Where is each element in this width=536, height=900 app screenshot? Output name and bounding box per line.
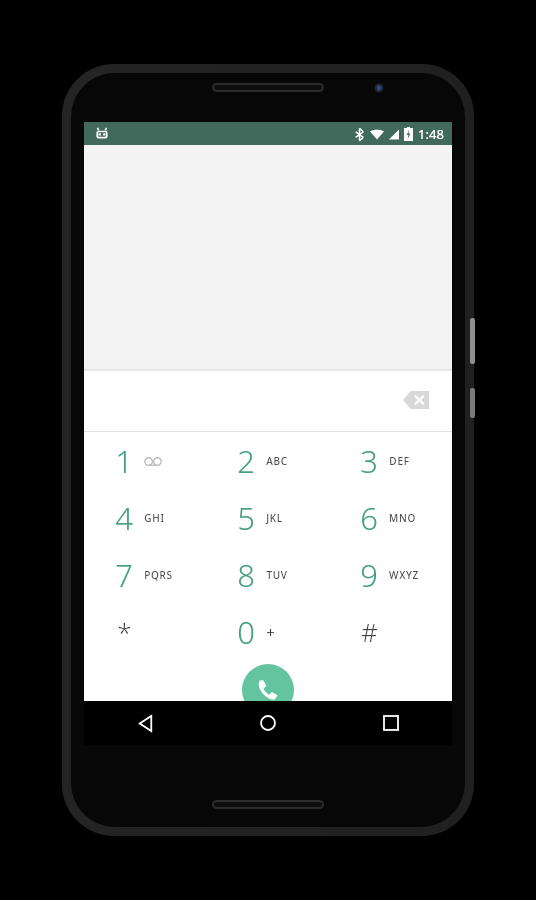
button[interactable]: 6 (329, 489, 452, 546)
staticText: 1:48 (418, 125, 444, 143)
button[interactable]: Back (84, 701, 206, 745)
staticText: 2 (237, 440, 255, 482)
staticText: MNO (389, 511, 416, 525)
staticText: 1 (115, 440, 133, 482)
button[interactable]: 2 (206, 432, 329, 489)
staticText: WXYZ (389, 568, 419, 582)
button[interactable]: 5 (206, 489, 329, 546)
staticText: + (266, 622, 275, 642)
button[interactable]: 7 (84, 546, 206, 603)
staticText: 5 (237, 497, 255, 539)
staticText: TUV (266, 568, 288, 582)
staticText: ABC (266, 454, 288, 468)
staticText: 0 (237, 611, 255, 653)
button[interactable]: Recents (329, 701, 452, 745)
staticText: GHI (144, 511, 165, 525)
button[interactable]: # (329, 603, 452, 660)
button[interactable]: 9 (329, 546, 452, 603)
staticText: 6 (360, 497, 378, 539)
staticText: DEF (389, 454, 410, 468)
button[interactable]: Call (242, 664, 294, 716)
staticText: PQRS (144, 568, 173, 582)
staticText: * (117, 614, 132, 649)
staticText: 3 (360, 440, 378, 482)
staticText: 7 (115, 554, 133, 596)
staticText: 8 (237, 554, 255, 596)
staticText: # (361, 614, 378, 649)
staticText: 4 (115, 497, 133, 539)
button[interactable]: 3 (329, 432, 452, 489)
button[interactable]: 8 (206, 546, 329, 603)
button[interactable]: Backspace (394, 380, 438, 420)
button[interactable]: 0 (206, 603, 329, 660)
button[interactable]: * (84, 603, 206, 660)
staticText: 9 (360, 554, 378, 596)
button[interactable]: 4 (84, 489, 206, 546)
button[interactable]: Home (206, 701, 329, 745)
staticText: JKL (266, 511, 283, 525)
button[interactable]: 1 (84, 432, 206, 489)
